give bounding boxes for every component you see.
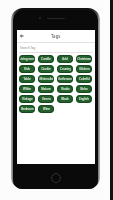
staticText: Living room <box>19 57 35 61</box>
staticText: Black <box>61 97 69 101</box>
staticText: Bathroom <box>58 77 72 81</box>
staticText: Cookie <box>41 67 51 71</box>
staticText: Tags <box>51 33 61 39</box>
staticText: English <box>79 97 89 101</box>
staticText: Christmas <box>77 57 91 61</box>
staticText: Green <box>42 97 51 101</box>
staticText: Kitchen <box>79 67 90 71</box>
staticText: Kids <box>24 67 30 71</box>
button[interactable]: Rustic <box>57 85 73 93</box>
button[interactable]: Bathroom <box>57 75 73 83</box>
button[interactable]: Green <box>38 95 54 103</box>
button[interactable]: Vintage <box>19 95 35 103</box>
button[interactable]: Candle <box>38 55 54 63</box>
staticText: Bedroom <box>21 107 34 111</box>
staticText: Candle <box>41 57 51 61</box>
staticText: Wine <box>43 107 50 111</box>
button[interactable]: Minimalist <box>38 75 54 83</box>
button[interactable]: White <box>19 85 35 93</box>
button[interactable]: Christmas <box>76 55 92 63</box>
button[interactable]: Black <box>57 95 73 103</box>
button[interactable]: Colorful <box>76 75 92 83</box>
button[interactable]: Table <box>19 75 35 83</box>
staticText: Colorful <box>79 77 90 81</box>
button[interactable]: Cookie <box>38 65 54 73</box>
button[interactable]: Bedroom <box>19 105 35 113</box>
staticText: Search Tag <box>20 46 36 50</box>
button[interactable]: Add <box>57 55 73 63</box>
button[interactable]: English <box>76 95 92 103</box>
staticText: White <box>23 87 31 91</box>
staticText: Boho <box>80 87 88 91</box>
button[interactable]: Living room <box>19 55 35 63</box>
button[interactable]: Nature <box>38 85 54 93</box>
button[interactable]: Kids <box>19 65 35 73</box>
button[interactable]: Back <box>18 32 26 40</box>
button[interactable]: Kitchen <box>76 65 92 73</box>
staticText: Add <box>62 57 68 61</box>
staticText: Rustic <box>61 87 70 91</box>
staticText: Country <box>60 67 71 71</box>
staticText: Vintage <box>22 97 33 101</box>
button[interactable]: Wine <box>38 105 54 113</box>
button[interactable]: Country <box>57 65 73 73</box>
button[interactable]: Boho <box>76 85 92 93</box>
staticText: Minimalist <box>39 77 54 81</box>
staticText: Nature <box>41 87 51 91</box>
staticText: Table <box>23 77 31 81</box>
